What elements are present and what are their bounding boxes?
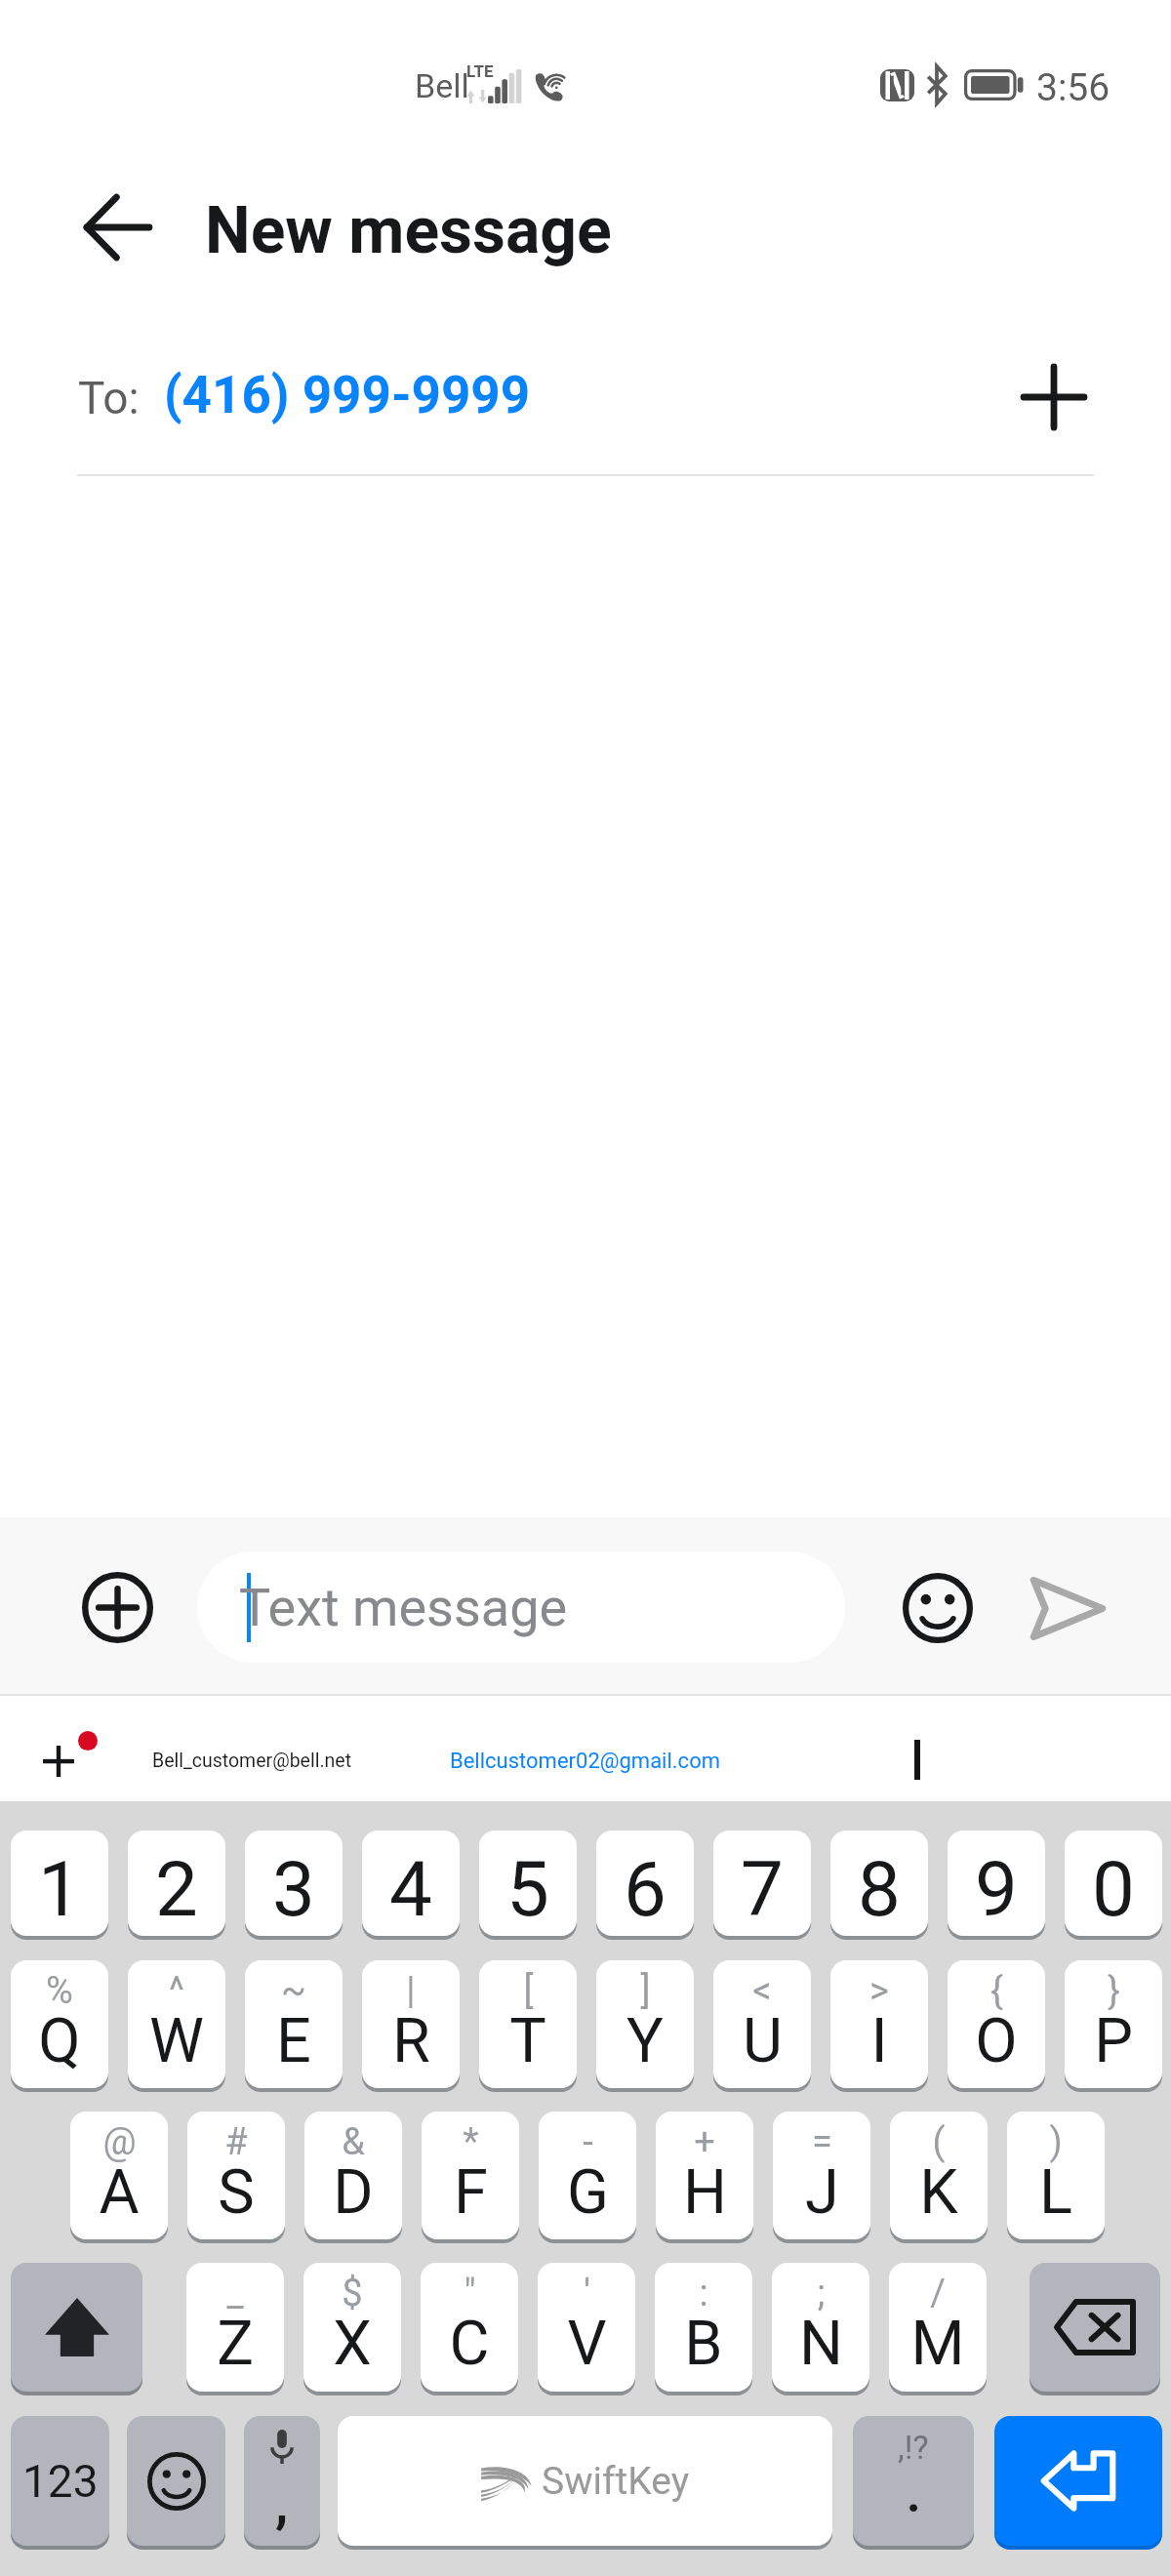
staticText: S xyxy=(218,2156,255,2229)
staticText: % xyxy=(46,1969,73,2013)
staticText: ^ xyxy=(169,1969,184,2013)
button[interactable]: * xyxy=(422,2112,519,2239)
button[interactable]: { xyxy=(948,1960,1045,2088)
staticText: R xyxy=(392,2005,430,2077)
button[interactable]: # xyxy=(187,2112,285,2239)
button[interactable]: _ xyxy=(186,2263,284,2392)
staticText: - xyxy=(583,2120,593,2164)
button[interactable]: 7 xyxy=(713,1831,811,1936)
staticText: 2 xyxy=(155,1845,198,1934)
staticText: ~ xyxy=(281,1969,306,2013)
button[interactable]: Emoji xyxy=(127,2416,225,2546)
staticText: W xyxy=(149,2005,204,2077)
button[interactable]: ^ xyxy=(128,1960,225,2088)
staticText: B xyxy=(684,2308,723,2380)
staticText: $ xyxy=(342,2272,363,2315)
button[interactable]: & xyxy=(304,2112,402,2239)
button[interactable]: } xyxy=(1065,1960,1162,2088)
button[interactable]: ) xyxy=(1007,2112,1105,2239)
button[interactable]: ' xyxy=(538,2263,635,2392)
staticText: Bell xyxy=(415,66,469,105)
staticText: J xyxy=(805,2156,839,2229)
staticText: Y xyxy=(626,2005,664,2077)
button[interactable]: 123 xyxy=(11,2416,109,2546)
button[interactable]: Backspace xyxy=(1030,2263,1160,2392)
button[interactable]: @ xyxy=(70,2112,168,2239)
button[interactable]: Emoji xyxy=(883,1553,992,1663)
button[interactable]: - xyxy=(539,2112,636,2239)
staticText: / xyxy=(930,2272,946,2315)
button[interactable]: % xyxy=(11,1960,108,2088)
staticText: ,!? xyxy=(898,2428,929,2467)
button[interactable]: " xyxy=(421,2263,518,2392)
staticText: I xyxy=(870,2005,888,2077)
button[interactable]: : xyxy=(655,2263,752,2392)
staticText: X xyxy=(333,2308,372,2380)
button[interactable]: 4 xyxy=(362,1831,460,1936)
button[interactable]: + xyxy=(656,2112,753,2239)
button[interactable]: 1 xyxy=(11,1831,108,1936)
button[interactable] xyxy=(197,1551,845,1663)
staticText: } xyxy=(1108,1969,1120,2013)
staticText: Text message xyxy=(239,1577,568,1638)
staticText: Bellcustomer02@gmail.com xyxy=(450,1749,720,1774)
staticText: 3:56 xyxy=(1036,65,1110,110)
button[interactable]: Back xyxy=(59,169,175,285)
button[interactable]: 2 xyxy=(128,1831,225,1936)
staticText: E xyxy=(276,2005,311,2077)
staticText: G xyxy=(567,2156,609,2229)
button[interactable]: Send xyxy=(1009,1550,1126,1667)
button[interactable]: | xyxy=(362,1960,460,2088)
button[interactable]: 0 xyxy=(1065,1831,1162,1936)
button[interactable]: ; xyxy=(772,2263,869,2392)
button[interactable]: 9 xyxy=(948,1831,1045,1936)
button[interactable]: = xyxy=(773,2112,870,2239)
staticText: 1 xyxy=(38,1845,81,1934)
staticText: ( xyxy=(932,2120,946,2164)
staticText: 9 xyxy=(975,1845,1018,1934)
button[interactable]: Add recipient xyxy=(1000,343,1108,451)
staticText: [ xyxy=(523,1969,534,2013)
button[interactable]: > xyxy=(830,1960,928,2088)
staticText: To: xyxy=(78,372,140,424)
button[interactable]: Shift xyxy=(11,2263,142,2392)
staticText: { xyxy=(990,1969,1003,2013)
button[interactable]: < xyxy=(713,1960,811,2088)
button[interactable]: ,!? xyxy=(853,2416,974,2546)
button[interactable]: ] xyxy=(596,1960,694,2088)
button[interactable]: [ xyxy=(479,1960,577,2088)
staticText: 5 xyxy=(506,1845,549,1934)
button[interactable]: / xyxy=(889,2263,987,2392)
button[interactable]: 8 xyxy=(830,1831,928,1936)
staticText: = xyxy=(812,2120,832,2164)
staticText: K xyxy=(919,2156,958,2229)
button[interactable]: Space xyxy=(338,2416,832,2546)
button[interactable]: Enter xyxy=(994,2416,1162,2546)
button[interactable]: ( xyxy=(890,2112,988,2239)
staticText: F xyxy=(454,2156,488,2229)
button[interactable]: 6 xyxy=(596,1831,694,1936)
staticText: 123 xyxy=(22,2455,99,2508)
button[interactable]: More options xyxy=(14,1711,103,1801)
button[interactable]: Add attachment xyxy=(62,1552,172,1662)
button[interactable]: 3 xyxy=(245,1831,343,1936)
staticText: Q xyxy=(38,2005,81,2077)
staticText: " xyxy=(464,2272,476,2315)
staticText: C xyxy=(449,2308,490,2380)
button[interactable]: 5 xyxy=(479,1831,577,1936)
staticText: @ xyxy=(102,2120,137,2164)
button[interactable]: Voice input xyxy=(244,2416,320,2546)
button[interactable]: $ xyxy=(303,2263,401,2392)
staticText: U xyxy=(743,2005,783,2077)
staticText: < xyxy=(752,1969,772,2013)
staticText: SwiftKey xyxy=(542,2459,690,2504)
staticText: D xyxy=(333,2156,374,2229)
staticText: A xyxy=(99,2156,140,2229)
staticText: N xyxy=(799,2308,843,2380)
staticText: T xyxy=(509,2005,546,2077)
staticText: ' xyxy=(584,2272,590,2315)
staticText: : xyxy=(699,2272,708,2315)
staticText: 0 xyxy=(1092,1845,1135,1934)
button[interactable]: ~ xyxy=(245,1960,343,2088)
staticText: _ xyxy=(226,2272,244,2315)
